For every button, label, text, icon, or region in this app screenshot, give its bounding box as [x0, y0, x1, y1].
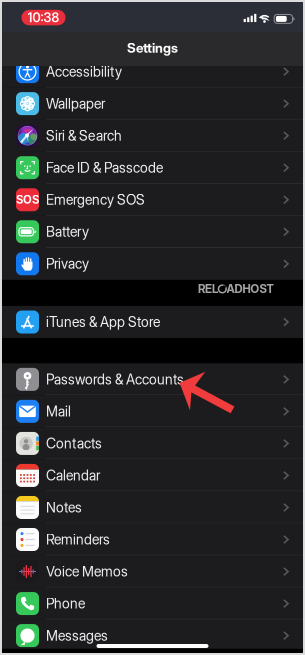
staticText: REL: [198, 282, 218, 296]
staticText: Mail: [46, 403, 71, 420]
button[interactable]: iTunes & App Store: [2, 306, 303, 338]
staticText: Voice Memos: [46, 563, 128, 580]
staticText: Reminders: [46, 531, 110, 548]
button[interactable]: Calendar: [2, 459, 303, 491]
button[interactable]: Accessibility: [2, 56, 303, 88]
button[interactable]: Notes: [2, 491, 303, 523]
button[interactable]: Wallpaper: [2, 88, 303, 120]
staticText: Emergency SOS: [46, 191, 145, 208]
staticText: ADHOST: [227, 282, 274, 296]
staticText: Wallpaper: [46, 95, 105, 112]
staticText: Privacy: [46, 255, 89, 272]
staticText: Messages: [46, 627, 108, 644]
button[interactable]: Messages: [2, 620, 303, 652]
staticText: SOS: [16, 193, 39, 207]
staticText: Calendar: [46, 467, 100, 484]
button[interactable]: SOS: [2, 184, 303, 216]
button[interactable]: Voice Memos: [2, 555, 303, 587]
staticText: Accessibility: [46, 63, 122, 80]
staticText: Face ID & Passcode: [46, 159, 163, 176]
staticText: Siri & Search: [46, 127, 122, 144]
button[interactable]: Face ID & Passcode: [2, 152, 303, 184]
staticText: iTunes & App Store: [46, 314, 160, 330]
staticText: Settings: [127, 40, 178, 56]
staticText: Phone: [46, 595, 85, 612]
staticText: 10:38: [27, 10, 59, 25]
button[interactable]: Phone: [2, 587, 303, 619]
staticText: Passwords & Accounts: [46, 371, 184, 388]
button[interactable]: Contacts: [2, 427, 303, 459]
button[interactable]: Passwords & Accounts: [2, 363, 303, 395]
button[interactable]: Privacy: [2, 248, 303, 280]
staticText: Notes: [46, 499, 82, 516]
staticText: Battery: [46, 223, 89, 240]
button[interactable]: Siri & Search: [2, 120, 303, 152]
button[interactable]: Battery: [2, 216, 303, 248]
staticText: Contacts: [46, 435, 102, 452]
button[interactable]: Reminders: [2, 523, 303, 555]
button[interactable]: Mail: [2, 395, 303, 427]
